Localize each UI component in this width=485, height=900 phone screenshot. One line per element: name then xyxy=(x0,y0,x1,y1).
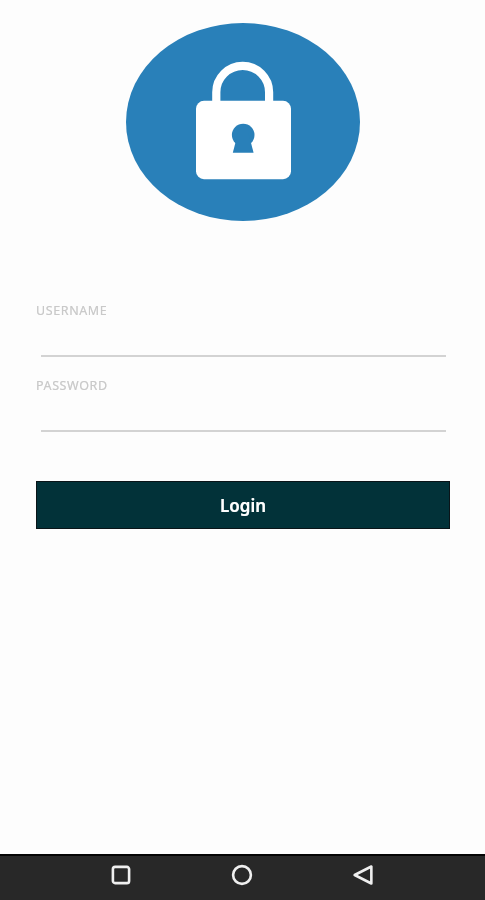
other: Secure login lock logo xyxy=(0,0,485,245)
staticText: Login xyxy=(220,494,267,517)
button[interactable]: Home xyxy=(202,855,282,895)
button[interactable]: USERNAME xyxy=(0,299,485,357)
staticText: USERNAME xyxy=(36,302,108,319)
button[interactable]: Back xyxy=(323,855,403,895)
button[interactable]: PASSWORD xyxy=(0,374,485,432)
button[interactable]: Login xyxy=(36,481,450,529)
button[interactable]: Recent apps xyxy=(81,855,161,895)
staticText: PASSWORD xyxy=(36,377,108,394)
